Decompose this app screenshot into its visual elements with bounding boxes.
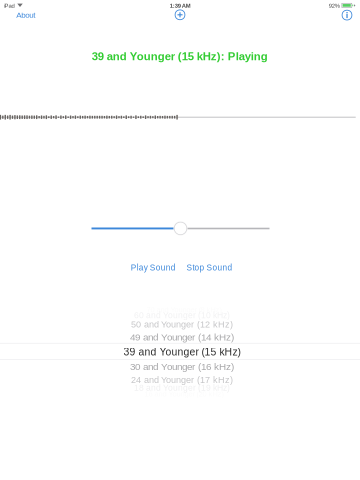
- staticText: 92%: [329, 2, 340, 9]
- staticText: 39 and Younger (15 kHz): Playing: [92, 50, 268, 63]
- staticText: 39 and Younger (15 kHz): [123, 346, 240, 358]
- button[interactable]: Play Sound: [126, 258, 181, 277]
- button[interactable]: Info: [337, 5, 357, 25]
- staticText: 24 and Younger (17 kHz): [131, 375, 233, 385]
- staticText: About: [16, 10, 35, 19]
- button[interactable]: Stop Sound: [181, 258, 237, 277]
- button[interactable]: Add tone: [170, 5, 190, 25]
- staticText: 18 and Younger (19 kHz): [134, 383, 230, 393]
- button[interactable]: About: [11, 5, 40, 24]
- staticText: Stop Sound: [186, 263, 232, 272]
- staticText: 49 and Younger (14 kHz): [130, 331, 234, 342]
- staticText: 30 and Younger (16 kHz): [130, 361, 234, 372]
- staticText: Play Sound: [131, 263, 176, 272]
- staticText: 50 and Younger (12 kHz): [131, 319, 233, 329]
- staticText: iPad: [3, 2, 14, 9]
- staticText: 1:39 AM: [170, 2, 191, 9]
- staticText: 60 and Younger (10 kHz): [134, 311, 230, 320]
